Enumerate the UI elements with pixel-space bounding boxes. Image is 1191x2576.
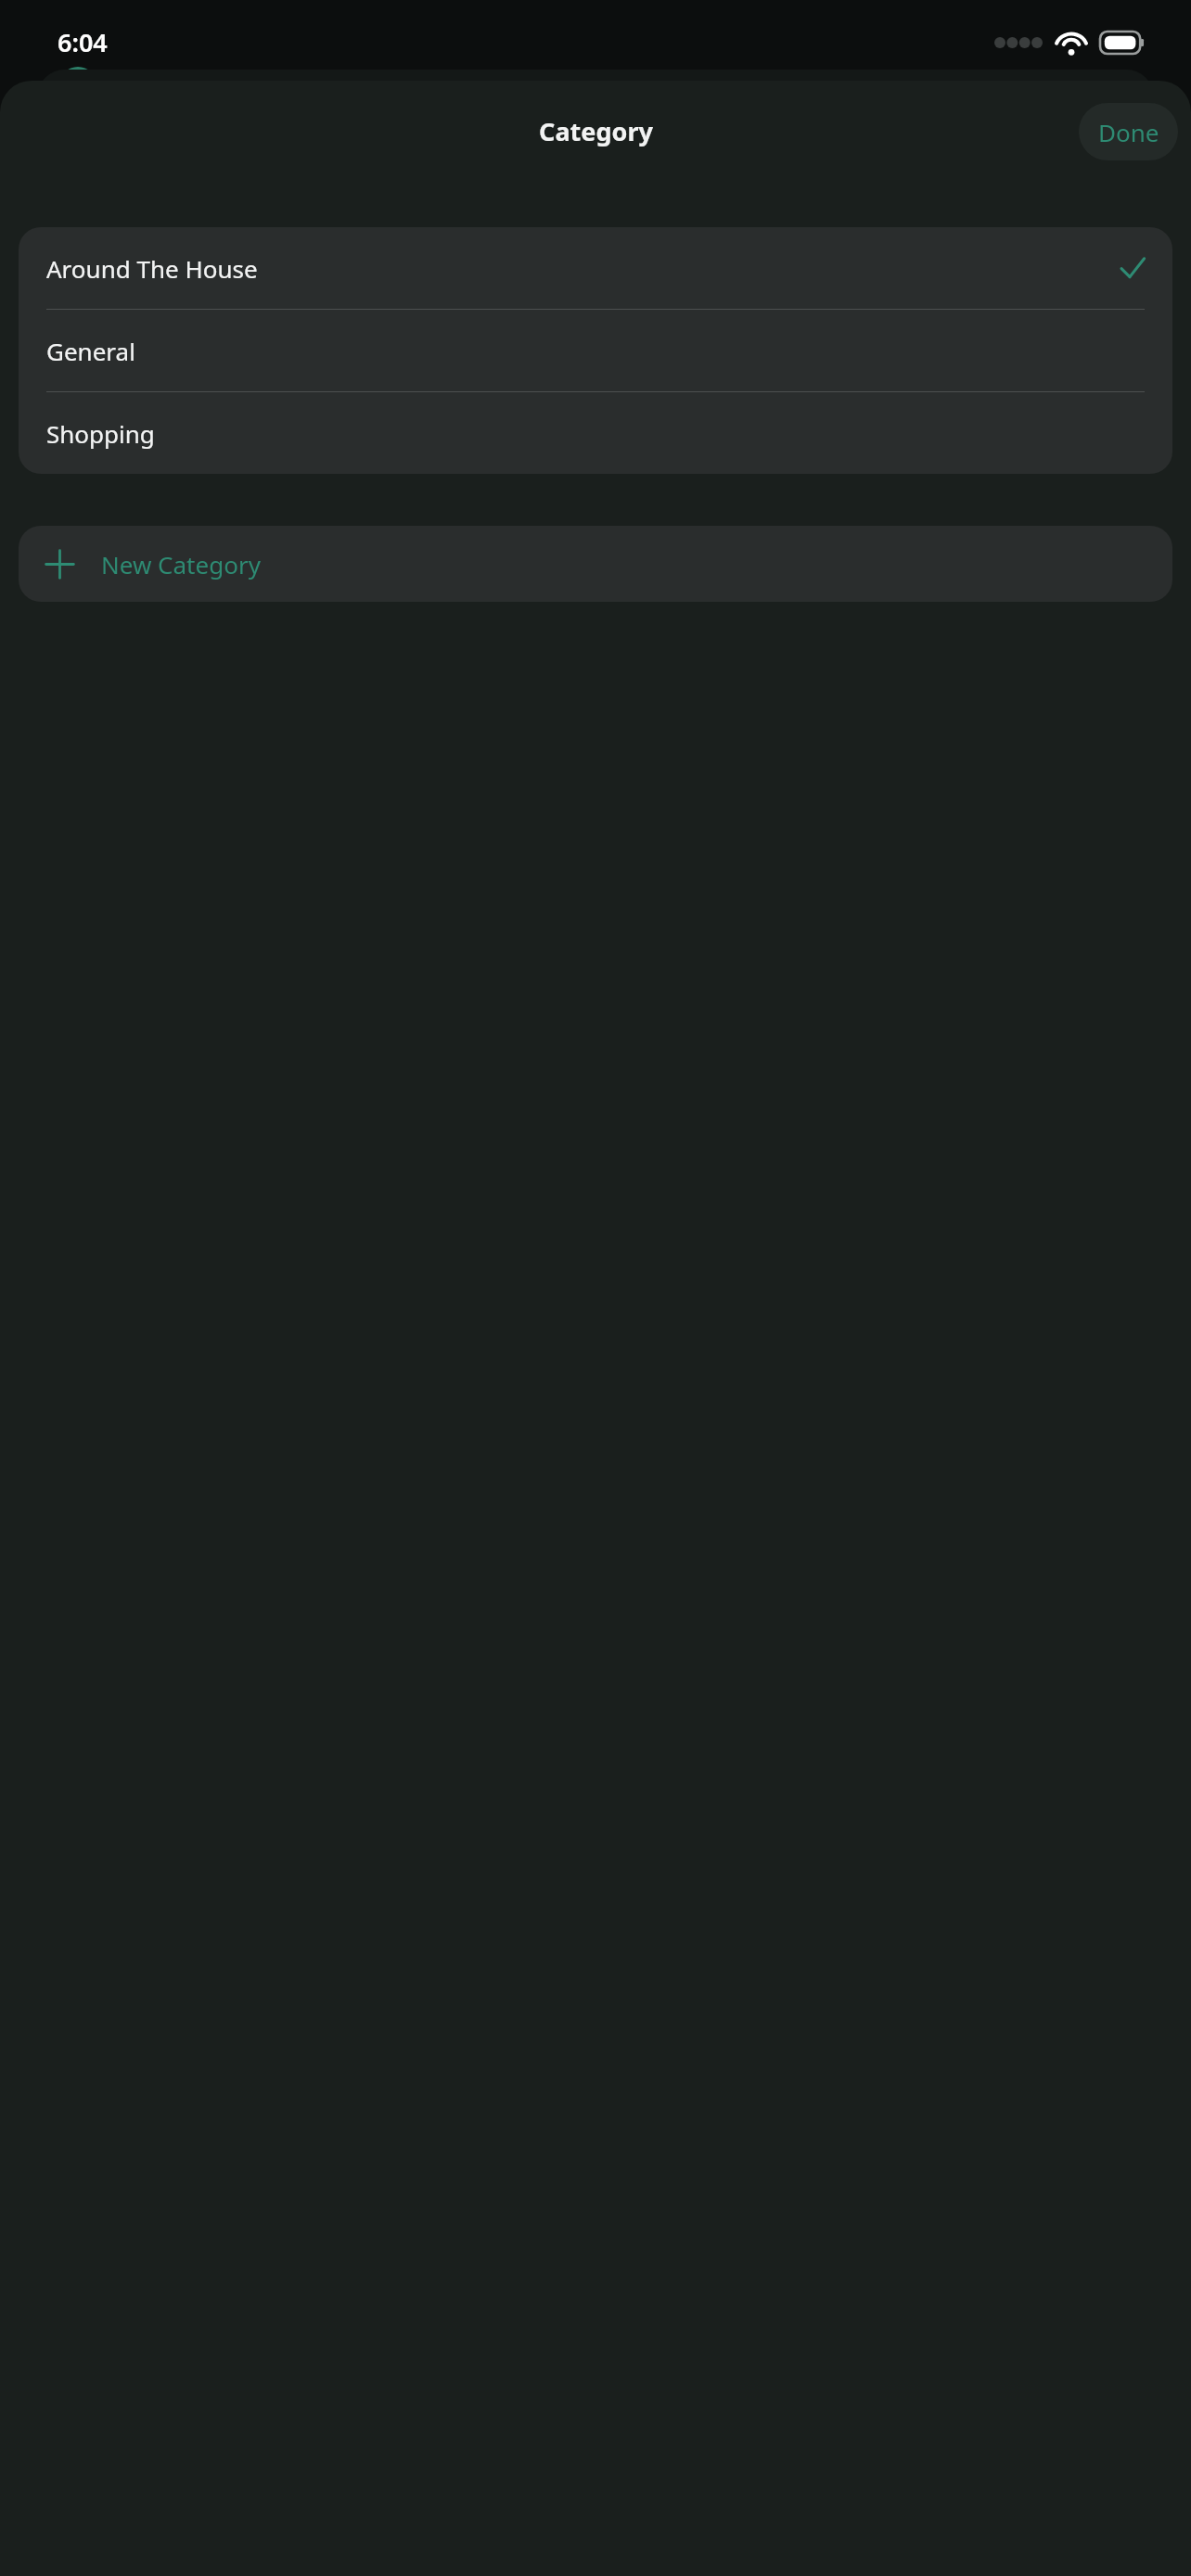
- staticText: 6:04: [58, 25, 108, 59]
- button[interactable]: Shopping: [19, 392, 1172, 474]
- staticText: Done: [1098, 116, 1159, 148]
- staticText: New Category: [101, 548, 261, 580]
- staticText: Around The House: [46, 252, 258, 285]
- other: Selected: [1119, 254, 1146, 282]
- button[interactable]: Done: [1079, 103, 1178, 160]
- staticText: Category: [539, 114, 653, 148]
- staticText: Shopping: [46, 417, 155, 450]
- button[interactable]: Around The House: [19, 227, 1172, 309]
- button[interactable]: New Category: [19, 526, 1172, 602]
- button[interactable]: General: [19, 310, 1172, 391]
- staticText: General: [46, 335, 135, 367]
